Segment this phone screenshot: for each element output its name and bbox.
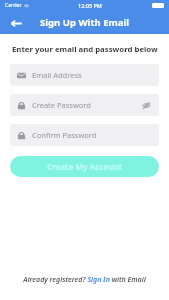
button[interactable]: Create My Account xyxy=(10,156,159,177)
staticText: Email Address xyxy=(32,70,82,80)
staticText: Sign Up With Email xyxy=(40,16,130,29)
staticText: Carrier xyxy=(5,2,22,9)
button[interactable]: Email Address xyxy=(10,64,159,86)
staticText: Create Password xyxy=(32,100,91,110)
staticText: Confirm Password xyxy=(32,130,97,140)
staticText: 12:05 PM xyxy=(78,2,102,9)
button[interactable]: Already registered? Sign In with Email xyxy=(0,275,169,285)
staticText: Already registered? Sign In with Email xyxy=(23,275,146,285)
staticText: Create My Account xyxy=(47,161,123,172)
button[interactable]: Create Password xyxy=(10,94,159,116)
button[interactable]: Back xyxy=(6,13,26,33)
staticText: Enter your email and password below xyxy=(12,44,158,55)
button[interactable]: Confirm Password xyxy=(10,124,159,146)
button[interactable]: Toggle password visibility xyxy=(140,99,152,111)
